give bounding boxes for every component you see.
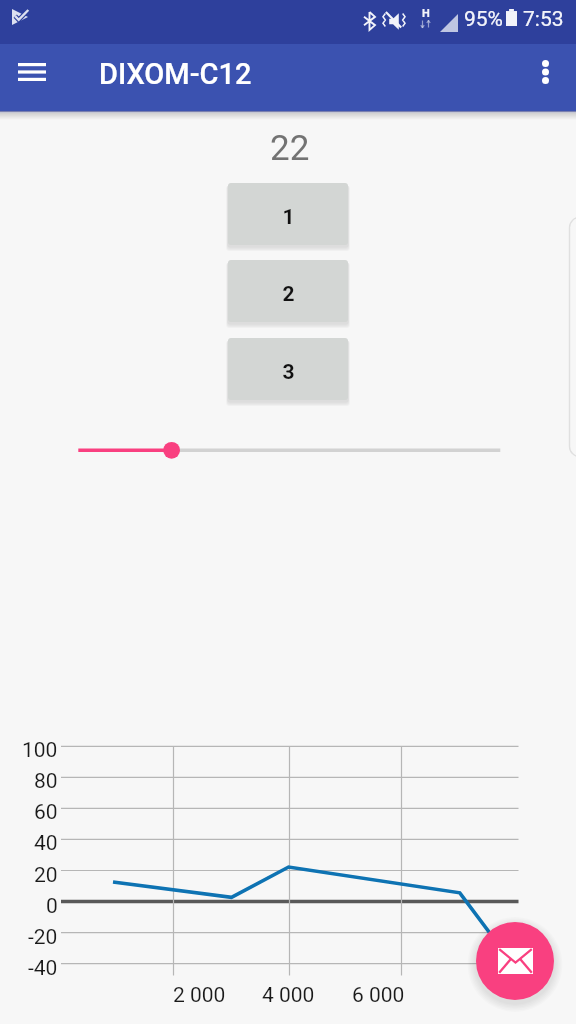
staticText: 2 bbox=[282, 282, 295, 307]
staticText: H bbox=[422, 7, 430, 20]
staticText: -20 bbox=[28, 925, 58, 950]
staticText: 6 000 bbox=[352, 983, 405, 1008]
staticText: 80 bbox=[34, 769, 58, 794]
staticText: 4 000 bbox=[262, 983, 315, 1008]
staticText: DIXOM-C12 bbox=[99, 57, 252, 91]
button[interactable]: Compose email bbox=[476, 922, 554, 1000]
staticText: 3 bbox=[282, 360, 295, 385]
button[interactable]: 3 bbox=[228, 338, 348, 400]
staticText: 1 bbox=[282, 205, 295, 230]
button[interactable]: Slider bbox=[60, 430, 520, 471]
staticText: 20 bbox=[34, 863, 58, 888]
staticText: 2 000 bbox=[173, 983, 226, 1008]
button[interactable]: More options bbox=[521, 48, 569, 96]
staticText: -40 bbox=[28, 956, 58, 981]
staticText: 60 bbox=[34, 800, 58, 825]
staticText: 95% bbox=[464, 7, 503, 32]
staticText: 7:53 bbox=[523, 7, 564, 32]
button[interactable]: 1 bbox=[228, 183, 348, 245]
button[interactable]: Open navigation menu bbox=[8, 48, 56, 96]
staticText: 0 bbox=[46, 894, 58, 919]
staticText: 40 bbox=[34, 831, 58, 856]
button[interactable]: 2 bbox=[228, 260, 348, 322]
staticText: 100 bbox=[22, 738, 58, 763]
staticText: 22 bbox=[270, 128, 310, 169]
